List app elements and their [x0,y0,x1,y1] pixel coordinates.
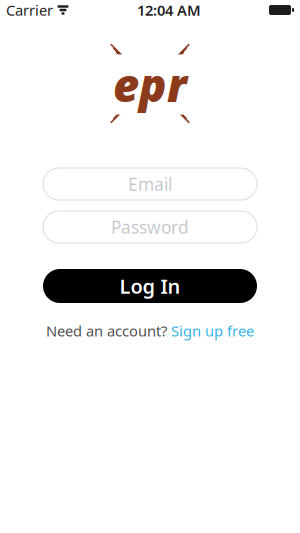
button[interactable]: Sign up free [171,321,254,340]
staticText: Carrier [6,0,53,20]
staticText: Email [128,172,172,195]
staticText: 12:04 AM [137,0,201,20]
staticText: Need an account? [46,321,167,340]
staticText: Password [111,215,189,238]
staticText: epr [113,54,187,115]
staticText: Sign up free [171,321,254,340]
button[interactable]: Email [43,168,257,200]
button[interactable]: Log In [43,269,257,303]
staticText: Log In [119,273,180,299]
button[interactable]: Password [43,211,257,243]
